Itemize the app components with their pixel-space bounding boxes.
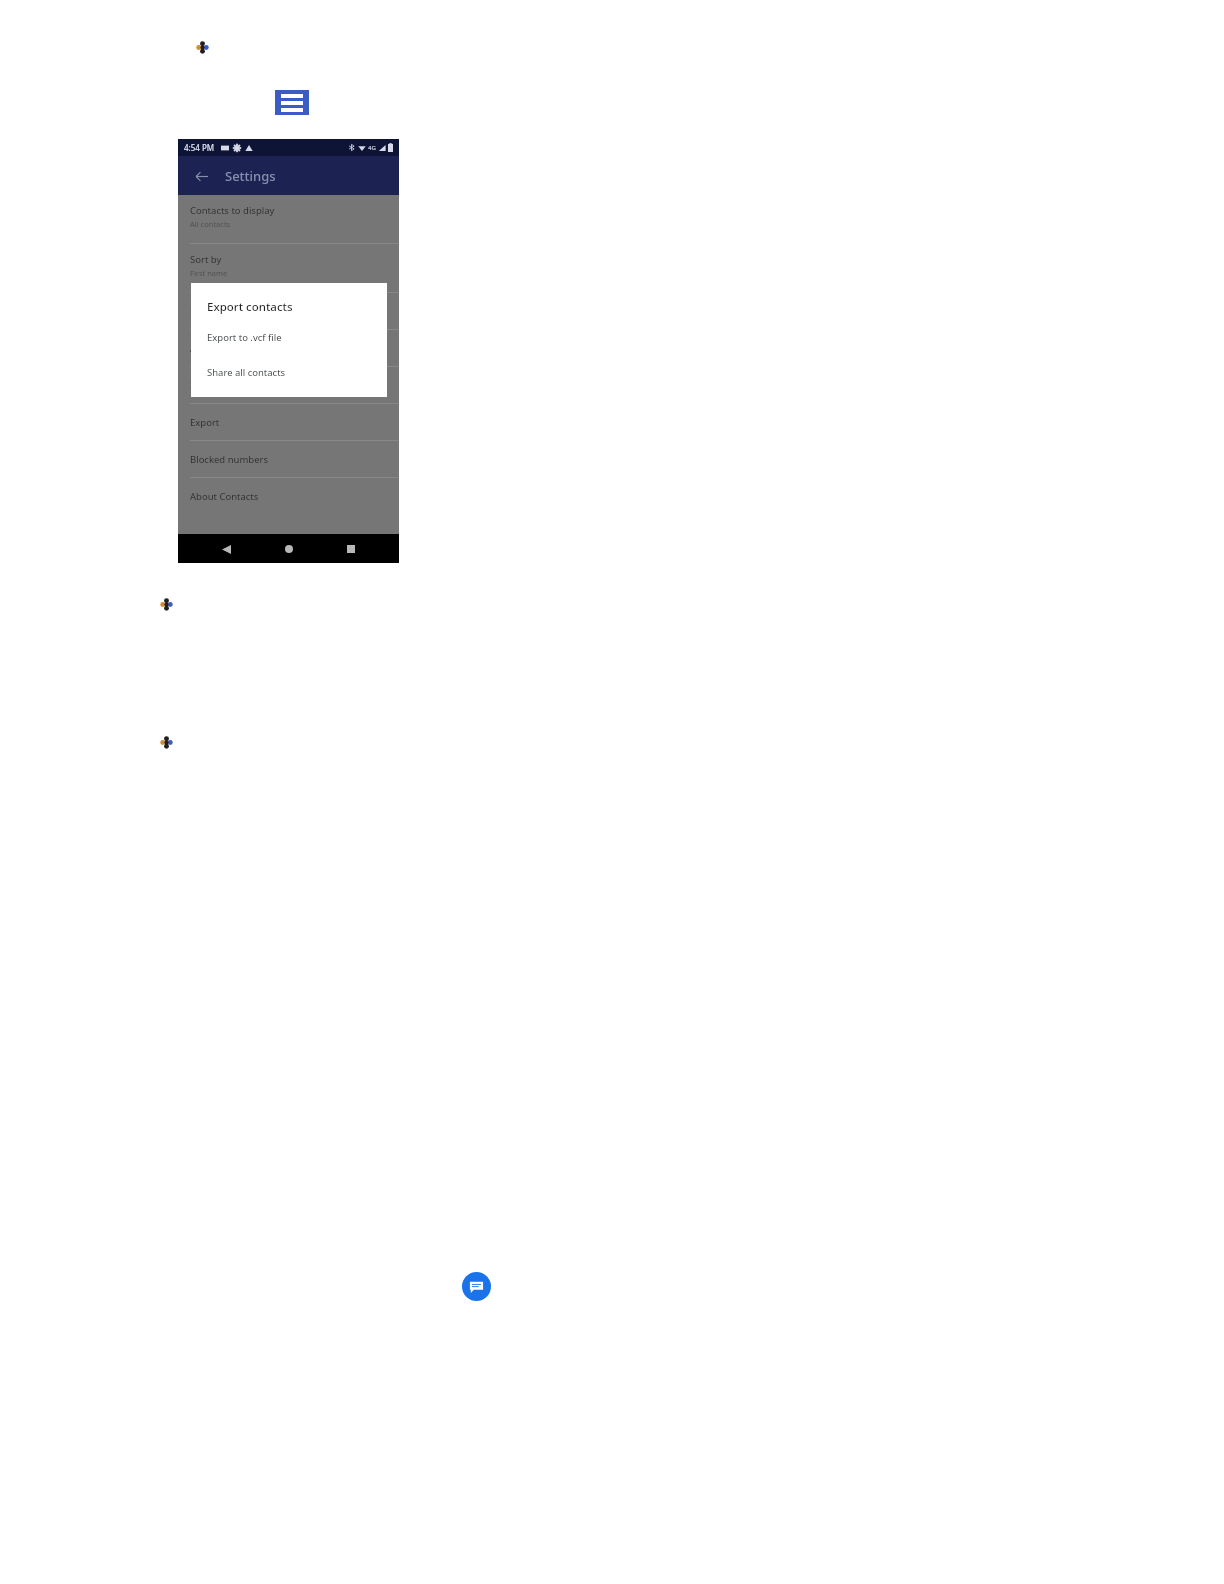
button[interactable]: Export to .vcf file	[191, 329, 387, 345]
staticText: Export contacts	[207, 299, 293, 315]
staticText: Export	[190, 416, 220, 429]
button[interactable]: Sort by	[178, 244, 399, 292]
staticText: Export to .vcf file	[207, 331, 282, 344]
button[interactable]: Import	[178, 367, 399, 403]
staticText: Name format	[190, 305, 250, 318]
button[interactable]: Recents	[337, 535, 365, 563]
button[interactable]: Back	[188, 163, 214, 189]
button[interactable]: About Contacts	[178, 478, 399, 514]
button[interactable]: Accounts	[178, 330, 399, 366]
staticText: First name	[190, 268, 228, 278]
staticText: Contacts to display	[190, 204, 275, 217]
staticText: Sort by	[190, 253, 222, 266]
button[interactable]: Menu	[275, 90, 309, 115]
staticText: 4:54 PM	[184, 142, 215, 153]
button[interactable]: Export	[178, 404, 399, 440]
staticText: Accounts	[190, 342, 231, 355]
button[interactable]: Home	[275, 535, 303, 563]
staticText: Import	[190, 379, 222, 392]
button[interactable]: Blocked numbers	[178, 441, 399, 477]
button[interactable]: Messages	[462, 1272, 491, 1301]
staticText: All contacts	[190, 219, 231, 229]
button[interactable]: Name format	[178, 293, 399, 329]
staticText: Share all contacts	[207, 366, 286, 379]
button[interactable]: Contacts to display	[178, 195, 399, 243]
button[interactable]: Share all contacts	[191, 364, 387, 380]
staticText: 4G	[368, 144, 376, 152]
button[interactable]: Back	[212, 535, 240, 563]
staticText: About Contacts	[190, 490, 259, 503]
staticText: Settings	[225, 167, 276, 185]
staticText: Blocked numbers	[190, 453, 268, 466]
